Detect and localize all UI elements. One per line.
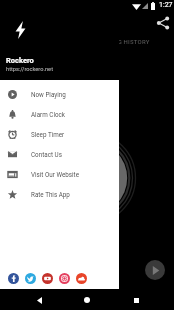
button[interactable]: Back <box>29 290 49 310</box>
staticText: 1:27 <box>159 1 173 9</box>
button[interactable]: Visit Our Website <box>0 164 119 184</box>
staticText: Contact Us <box>31 151 62 158</box>
button[interactable]: Alarm Clock <box>0 104 119 124</box>
button[interactable]: Share <box>156 16 170 30</box>
staticText: Now Playing <box>31 91 66 98</box>
button[interactable]: Play <box>145 260 165 280</box>
button[interactable]: Recents <box>126 290 146 310</box>
staticText: Alarm Clock <box>31 111 65 118</box>
button[interactable]: Sleep Timer <box>0 124 119 144</box>
button[interactable]: Facebook <box>8 273 19 284</box>
button[interactable]: SoundCloud <box>76 273 87 284</box>
button[interactable]: Contact Us <box>0 144 119 164</box>
staticText: Rockero <box>6 56 34 65</box>
staticText: SONG HISTORY <box>105 38 150 45</box>
button[interactable]: Now Playing <box>0 84 119 104</box>
button[interactable]: YouTube <box>42 273 53 284</box>
button[interactable]: Twitter <box>25 273 36 284</box>
button[interactable]: Rate This App <box>0 184 119 204</box>
staticText: Sleep Timer <box>31 131 65 138</box>
staticText: Rate This App <box>31 191 70 198</box>
button[interactable]: Home <box>77 290 97 310</box>
staticText: Visit Our Website <box>31 171 79 178</box>
staticText: https://rockero.net <box>6 66 53 73</box>
button[interactable]: Instagram <box>59 273 70 284</box>
